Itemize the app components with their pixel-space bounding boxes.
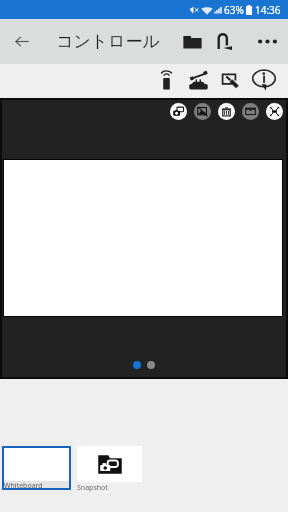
button[interactable]: Remote control [150,63,182,97]
button[interactable]: Snapshot [77,446,142,493]
button[interactable]: Call [182,63,214,97]
staticText: 14:36 [255,3,281,17]
button[interactable]: Redo [202,19,246,64]
staticText: Whiteboard [4,481,43,490]
staticText: Snapshot [77,483,108,493]
button[interactable]: Presentation [242,103,259,120]
button[interactable]: Folder [179,19,205,64]
button[interactable]: Whiteboard [2,446,71,490]
button[interactable]: Delete [218,103,235,120]
button[interactable]: Information [247,63,280,97]
button[interactable]: Image disabled [194,103,211,120]
button[interactable]: More options [246,19,288,64]
staticText: コントロール [56,31,160,52]
button[interactable]: Back [6,19,38,64]
button[interactable]: Annotate screen [214,63,247,97]
button[interactable]: Take snapshot [170,103,187,120]
staticText: 63% [224,3,244,17]
button[interactable]: Fullscreen [266,103,283,120]
